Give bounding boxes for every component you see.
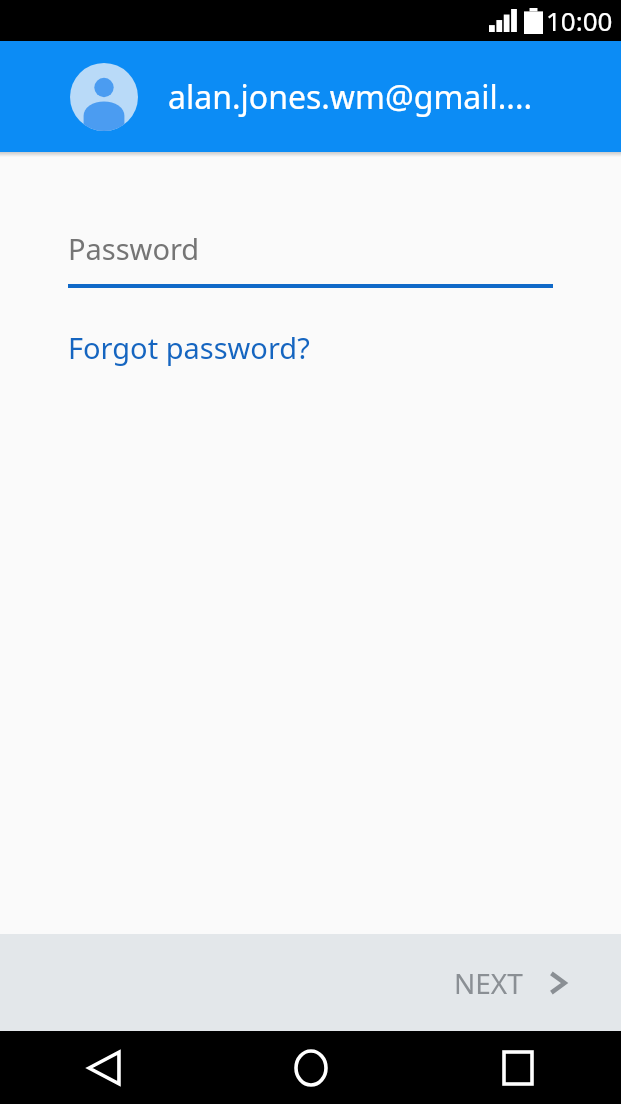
staticText: Forgot password?	[68, 328, 310, 367]
staticText: 10:00	[546, 3, 613, 38]
button[interactable]: NEXT	[454, 964, 569, 1002]
button[interactable]: Forgot password?	[68, 328, 310, 367]
button[interactable]: Password	[68, 229, 553, 288]
staticText: alan.jones.wm@gmail....	[168, 75, 533, 119]
button[interactable]: Home	[207, 1031, 414, 1104]
staticText: NEXT	[454, 964, 523, 1002]
button[interactable]: Back	[0, 1031, 207, 1104]
staticText: Password	[68, 229, 200, 268]
button[interactable]: Recent apps	[414, 1031, 621, 1104]
button[interactable]: alan.jones.wm@gmail....	[0, 41, 621, 152]
